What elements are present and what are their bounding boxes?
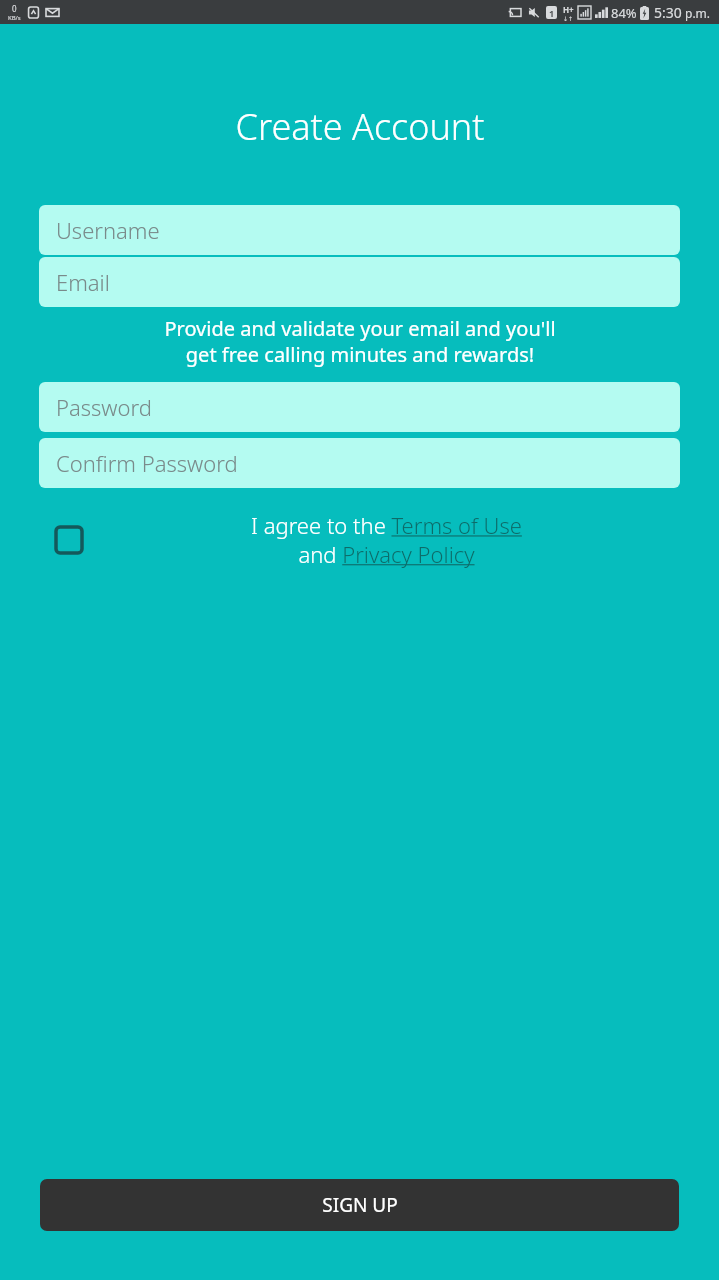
button[interactable]: Confirm Password: [39, 438, 680, 488]
button[interactable]: Email: [39, 257, 680, 307]
staticText: Provide and validate your email and you'…: [164, 315, 556, 368]
button[interactable]: Username: [39, 205, 680, 255]
staticText: 0: [12, 3, 17, 14]
staticText: 1: [549, 7, 555, 19]
staticText: Confirm Password: [56, 448, 238, 478]
button[interactable]: SIGN UP: [40, 1179, 679, 1231]
staticText: Create Account: [235, 102, 485, 151]
staticText: 5:30: [654, 3, 682, 22]
staticText: KB/s: [8, 14, 21, 22]
button[interactable]: Agree to terms checkbox: [46, 517, 92, 563]
button[interactable]: Password: [39, 382, 680, 432]
staticText: SIGN UP: [322, 1192, 398, 1218]
staticText: Email: [56, 267, 110, 297]
staticText: Password: [56, 392, 152, 422]
staticText: 84%: [611, 4, 637, 22]
staticText: H+: [563, 4, 574, 15]
staticText: Username: [56, 215, 160, 245]
staticText: p.m.: [685, 5, 711, 21]
button[interactable]: I agree to the Terms of Use and Privacy …: [100, 510, 673, 569]
staticText: I agree to the Terms of Use and Privacy …: [251, 510, 522, 569]
staticText: ↓↑: [563, 15, 574, 22]
